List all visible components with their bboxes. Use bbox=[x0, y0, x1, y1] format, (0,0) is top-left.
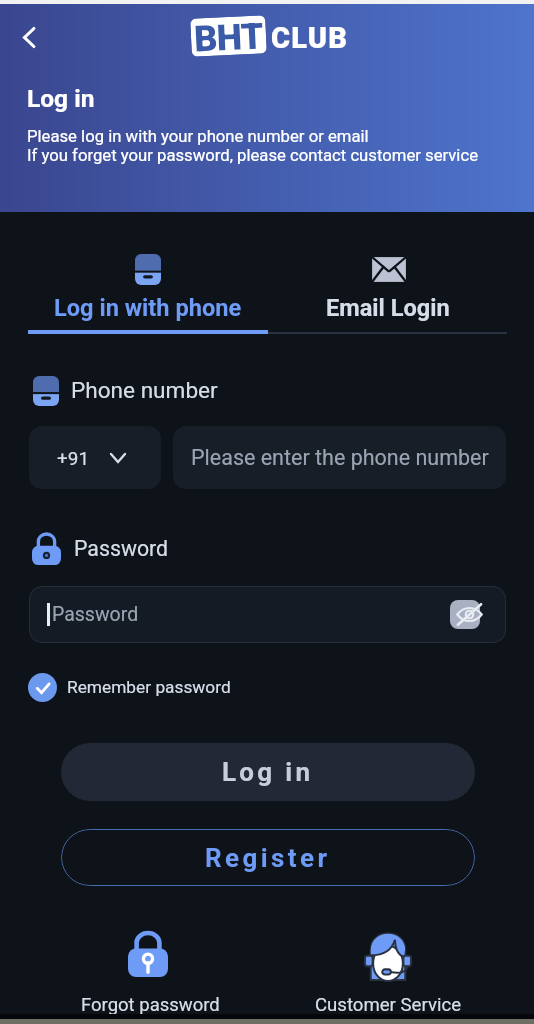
staticText: Remember password bbox=[67, 677, 231, 697]
button[interactable]: Please enter the phone number bbox=[173, 426, 506, 489]
button[interactable]: Back bbox=[12, 20, 47, 55]
staticText: Log in with phone bbox=[54, 294, 242, 322]
staticText: Phone number bbox=[71, 377, 218, 403]
staticText: Please enter the phone number bbox=[191, 445, 489, 470]
staticText: Log in bbox=[222, 757, 314, 787]
button[interactable]: Remember password bbox=[28, 672, 231, 702]
staticText: Password bbox=[74, 536, 169, 561]
button[interactable]: +91 bbox=[29, 426, 161, 489]
staticText: +91 bbox=[57, 447, 90, 469]
staticText: Customer Service bbox=[315, 994, 462, 1016]
staticText: Password bbox=[52, 603, 139, 626]
button[interactable]: Password bbox=[29, 586, 506, 643]
staticText: CLUB bbox=[271, 21, 349, 55]
button[interactable]: Show password bbox=[446, 596, 484, 634]
staticText: If you forget your password, please cont… bbox=[27, 146, 479, 166]
staticText: Email Login bbox=[326, 294, 450, 322]
button[interactable] bbox=[268, 240, 508, 335]
button[interactable] bbox=[300, 925, 480, 1015]
button[interactable]: Log in bbox=[61, 743, 475, 801]
button[interactable] bbox=[28, 240, 268, 335]
staticText: Please log in with your phone number or … bbox=[27, 127, 369, 147]
button[interactable] bbox=[60, 925, 240, 1015]
staticText: Log in bbox=[27, 84, 95, 113]
button[interactable]: Register bbox=[61, 829, 475, 886]
staticText: BHT bbox=[193, 15, 264, 57]
staticText: Register bbox=[205, 843, 331, 873]
staticText: Forgot password bbox=[81, 994, 220, 1016]
